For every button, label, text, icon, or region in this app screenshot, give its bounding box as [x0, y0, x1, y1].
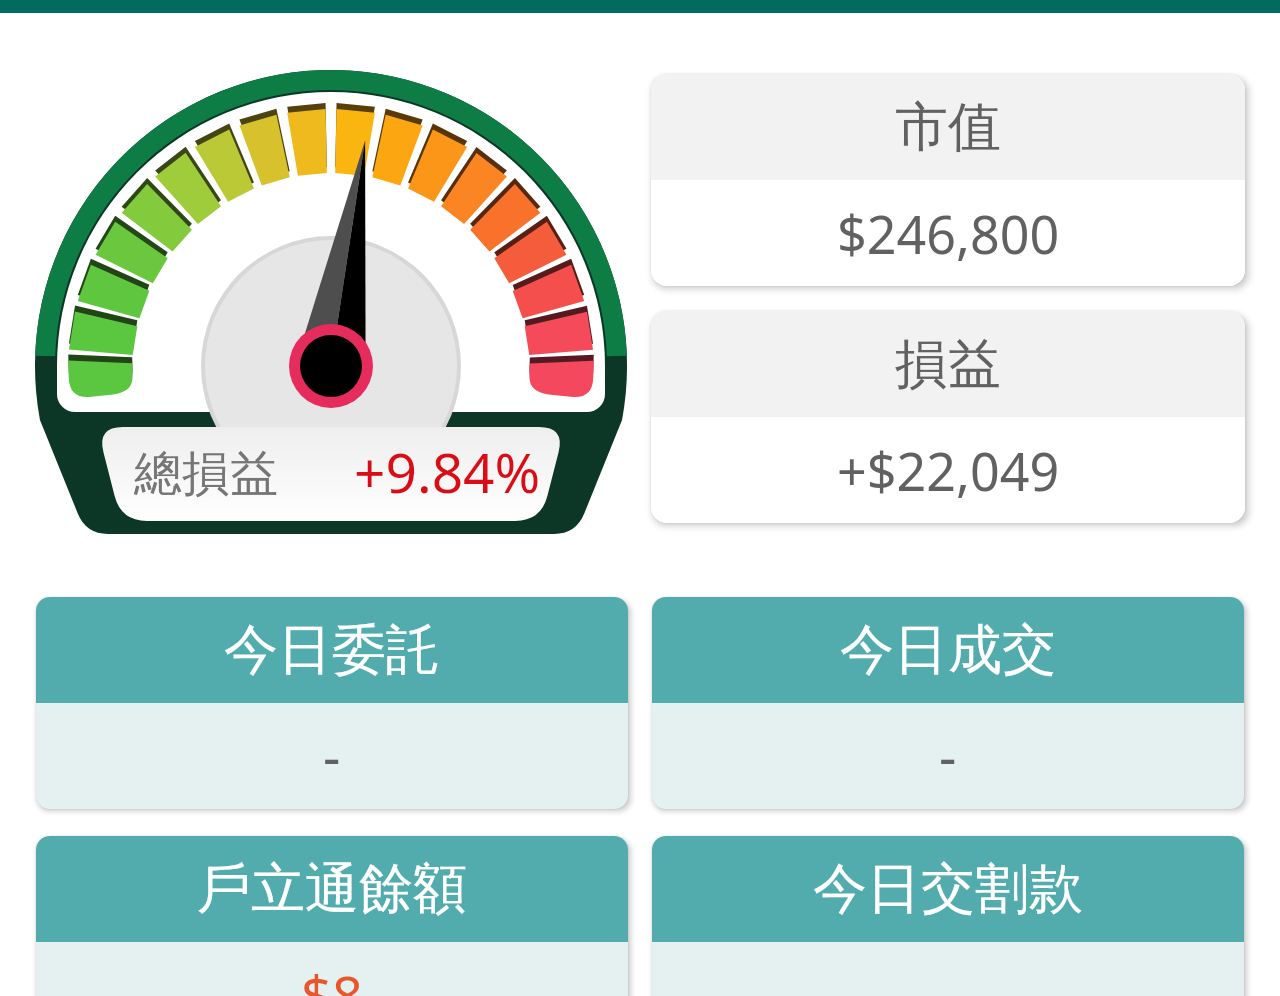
staticText: $8 — [301, 958, 363, 996]
staticText: 市值 — [895, 94, 1001, 161]
staticText: 今日成交 — [840, 616, 1056, 684]
staticText: $246,800 — [837, 198, 1060, 269]
staticText: - — [323, 719, 341, 793]
button[interactable]: 損益 — [651, 311, 1245, 523]
button[interactable]: 今日交割款 — [652, 836, 1244, 996]
staticText: - — [939, 719, 957, 793]
staticText: 今日交割款 — [813, 855, 1083, 923]
staticText: +9.84% — [354, 434, 541, 509]
staticText: 總損益 — [134, 444, 278, 504]
staticText: 今日委託 — [224, 616, 440, 684]
button[interactable]: 今日成交 — [652, 597, 1244, 809]
staticText: 損益 — [895, 331, 1001, 398]
button[interactable]: 市值 — [651, 74, 1245, 286]
staticText: 戶立通餘額 — [197, 855, 467, 923]
button[interactable]: 戶立通餘額 — [36, 836, 628, 996]
button[interactable]: 今日委託 — [36, 597, 628, 809]
staticText: +$22,049 — [837, 435, 1060, 506]
